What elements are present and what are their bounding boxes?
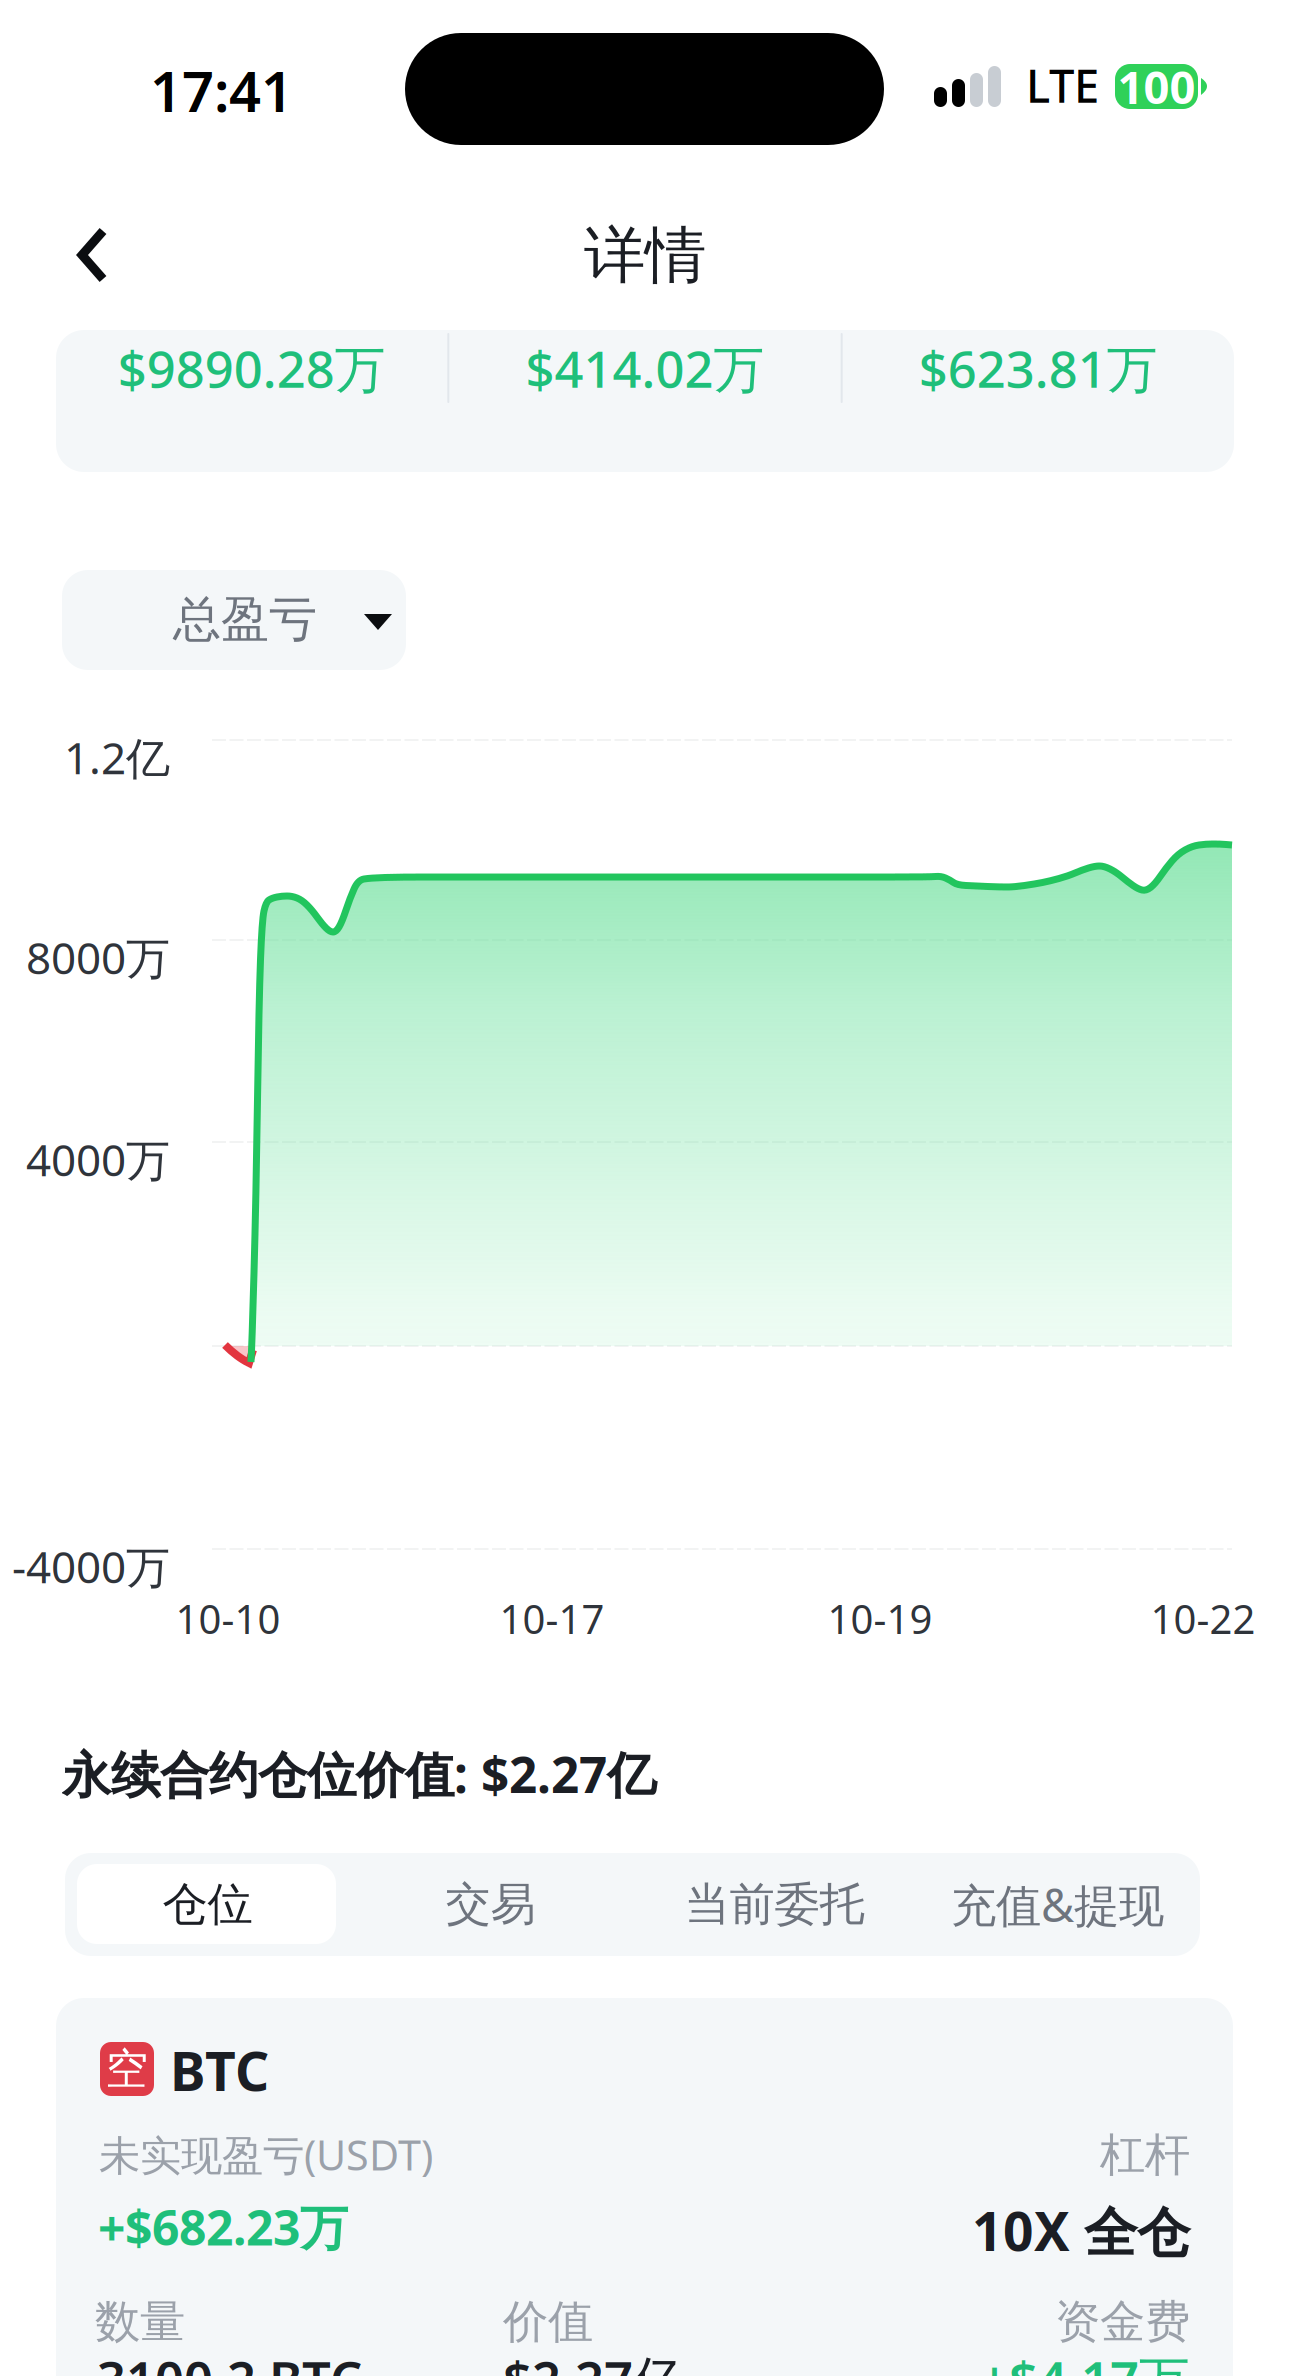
staticText: 8000万 [26, 928, 170, 986]
staticText: 100 [1117, 56, 1195, 117]
staticText: $623.81万 [919, 334, 1158, 402]
button[interactable]: 仓位 [66, 1853, 349, 1956]
staticText: $2.27亿 [503, 2345, 684, 2376]
staticText: $414.02万 [525, 334, 764, 402]
staticText: 价值 [503, 2294, 593, 2350]
staticText: $9890.28万 [118, 334, 386, 402]
staticText: 10-19 [827, 1592, 932, 1645]
staticText: 空 [105, 2043, 148, 2095]
staticText: 10X 全仓 [972, 2195, 1190, 2266]
staticText: 详情 [584, 218, 706, 293]
staticText: 交易 [445, 1877, 535, 1932]
button[interactable]: 当前委托 [633, 1853, 916, 1956]
staticText: 3100.2 BTC [97, 2345, 362, 2376]
staticText: 17:41 [150, 53, 293, 127]
button[interactable]: Back [48, 210, 138, 300]
staticText: 10-22 [1150, 1592, 1255, 1645]
button[interactable]: 交易 [349, 1853, 632, 1956]
staticText: 永续合约仓位价值: $2.27亿 [62, 1741, 656, 1806]
staticText: 10-10 [175, 1592, 280, 1645]
button[interactable]: 总盈亏 [62, 570, 406, 670]
staticText: 1.2亿 [64, 728, 170, 786]
staticText: 未实现盈亏(USDT) [99, 2127, 433, 2182]
staticText: +$682.23万 [98, 2195, 348, 2259]
staticText: +$4.17万 [980, 2345, 1190, 2376]
staticText: 数量 [95, 2294, 185, 2350]
staticText: 资金费 [1055, 2294, 1190, 2350]
staticText: 总盈亏 [173, 590, 317, 649]
staticText: 仓位 [162, 1877, 252, 1932]
staticText: 当前委托 [684, 1877, 864, 1932]
staticText: 4000万 [26, 1130, 170, 1188]
staticText: 充值&提现 [951, 1874, 1164, 1935]
button[interactable]: 充值&提现 [916, 1853, 1199, 1956]
staticText: BTC [170, 2035, 269, 2106]
staticText: -4000万 [12, 1537, 170, 1595]
staticText: 杠杆 [1100, 2127, 1190, 2183]
staticText: 10-17 [499, 1592, 604, 1645]
staticText: LTE [1026, 55, 1099, 115]
